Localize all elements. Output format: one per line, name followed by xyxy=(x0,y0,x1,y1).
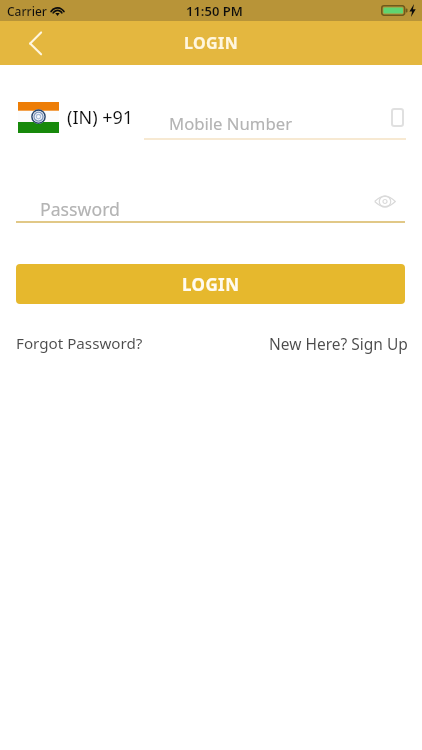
staticText: New Here? Sign Up xyxy=(269,333,408,354)
staticText: Carrier xyxy=(7,3,47,19)
button[interactable]: (IN) +91 xyxy=(18,102,134,133)
staticText: Forgot Password? xyxy=(16,333,143,354)
staticText: Password xyxy=(40,197,121,221)
staticText: (IN) +91 xyxy=(67,105,134,130)
button[interactable]: LOGIN xyxy=(16,264,405,304)
button[interactable]: Forgot Password? xyxy=(16,333,143,354)
button[interactable]: Show password xyxy=(371,188,399,214)
staticText: LOGIN xyxy=(184,32,239,54)
staticText: 11:50 PM xyxy=(186,2,243,20)
staticText: Mobile Number xyxy=(169,112,293,135)
button[interactable]: Phone xyxy=(388,105,406,130)
button[interactable]: Back xyxy=(25,28,53,56)
staticText: LOGIN xyxy=(182,273,240,296)
button[interactable]: New Here? Sign Up xyxy=(269,333,408,354)
